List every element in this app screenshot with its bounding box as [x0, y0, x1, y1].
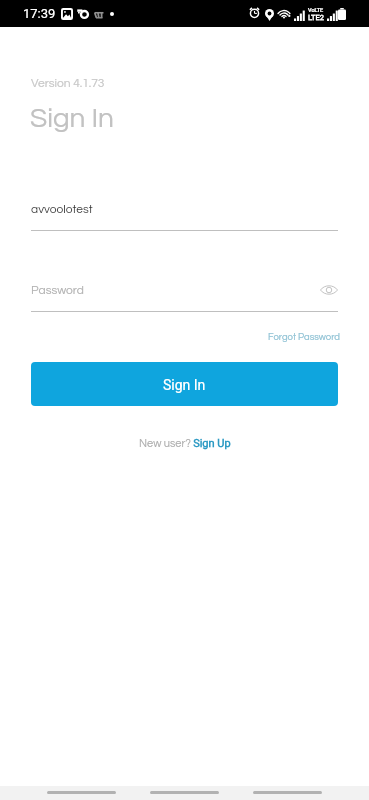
staticText: New user? Sign Up: [139, 437, 231, 450]
staticText: VoLTE: [308, 7, 324, 13]
button[interactable]: Home: [150, 791, 219, 794]
staticText: Password: [31, 284, 84, 296]
staticText: Version 4.1.73: [31, 77, 105, 89]
button[interactable]: New user? Sign Up: [139, 437, 231, 450]
staticText: Sign In: [30, 104, 114, 133]
staticText: Sign In: [163, 377, 206, 393]
button[interactable]: Back: [47, 791, 116, 794]
staticText: Forgot Password: [268, 332, 340, 342]
staticText: 17:39: [23, 6, 56, 21]
staticText: LTE2: [308, 13, 324, 22]
staticText: avvoolotest: [31, 203, 93, 215]
button[interactable]: Show password: [317, 278, 340, 301]
button[interactable]: Forgot Password: [268, 332, 340, 342]
button[interactable]: Recents: [253, 791, 322, 794]
button[interactable]: Sign In: [31, 362, 338, 406]
